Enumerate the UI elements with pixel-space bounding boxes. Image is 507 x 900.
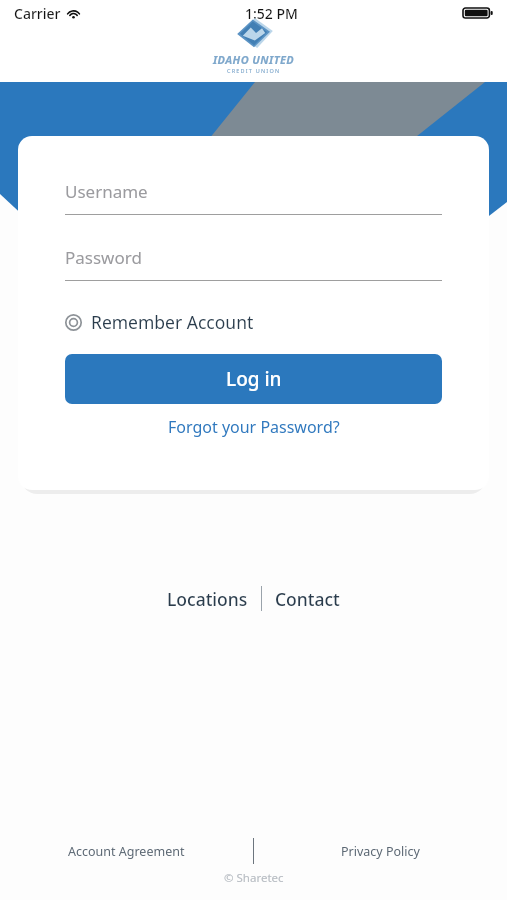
staticText: Locations	[167, 587, 248, 611]
button[interactable]: Locations	[167, 587, 248, 611]
staticText: Carrier	[14, 4, 61, 23]
staticText: Privacy Policy	[341, 843, 420, 860]
button[interactable]: Password	[65, 246, 442, 281]
staticText: Log in	[226, 366, 282, 392]
staticText: Forgot your Password?	[168, 416, 340, 438]
staticText: © Sharetec	[224, 870, 284, 886]
button[interactable]: Remember Account	[65, 310, 254, 334]
button[interactable]: Forgot your Password?	[65, 416, 442, 438]
button[interactable]: Privacy Policy	[254, 843, 507, 860]
staticText: IDAHO UNITED	[213, 52, 295, 67]
staticText: Remember Account	[91, 310, 254, 334]
staticText: Account Agreement	[68, 843, 185, 860]
button[interactable]: Username	[65, 180, 442, 215]
staticText: Username	[65, 180, 148, 203]
staticText: Contact	[275, 587, 340, 611]
button[interactable]: Contact	[275, 587, 340, 611]
button[interactable]: Account Agreement	[0, 843, 253, 860]
button[interactable]: Log in	[65, 354, 442, 404]
staticText: 1:52 PM	[245, 4, 298, 23]
staticText: Password	[65, 246, 142, 269]
staticText: CREDIT UNION	[227, 67, 281, 74]
